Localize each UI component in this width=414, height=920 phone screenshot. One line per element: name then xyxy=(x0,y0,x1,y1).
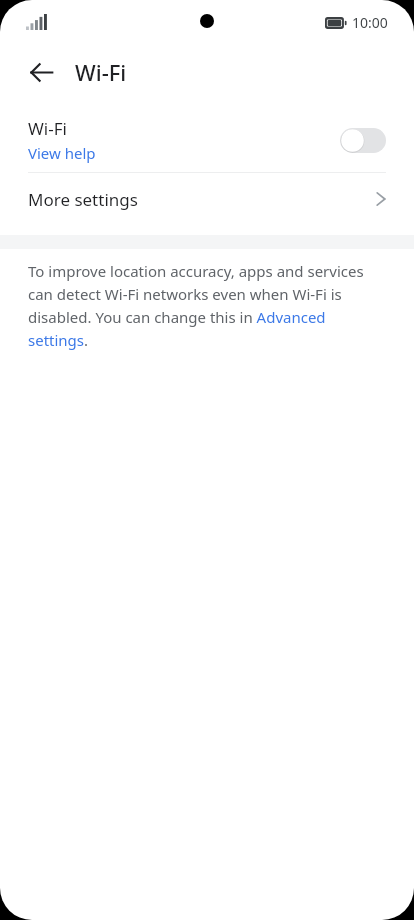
button[interactable]: Wi-Fi toggle, off xyxy=(340,128,386,153)
staticText: More settings xyxy=(28,188,376,211)
staticText: To improve location accuracy, apps and s… xyxy=(28,261,386,350)
button[interactable]: Wi-Fi xyxy=(0,108,414,172)
staticText: Wi-Fi xyxy=(28,117,67,140)
staticText: View help xyxy=(28,143,96,163)
button[interactable]: More settings xyxy=(0,173,414,225)
staticText: Wi-Fi xyxy=(75,57,127,87)
staticText: 10:00 xyxy=(352,13,388,32)
button[interactable]: Back xyxy=(18,49,64,95)
